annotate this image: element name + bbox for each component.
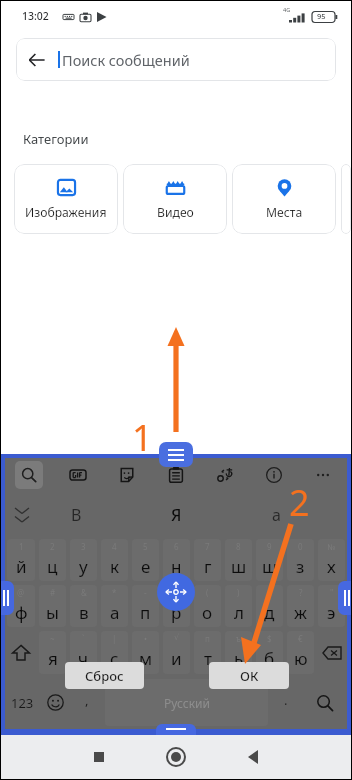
button[interactable]: Keyboard tool [112, 461, 141, 489]
button[interactable]: Shift [7, 631, 35, 674]
button[interactable]: * [101, 585, 128, 627]
button[interactable]: Back [16, 39, 58, 81]
button[interactable]: Я [126, 492, 226, 537]
button[interactable]: 123 [5, 676, 39, 729]
button[interactable]: 8 [225, 539, 252, 581]
button[interactable]: Back [16, 38, 336, 81]
button[interactable]: ъ [225, 631, 252, 674]
button[interactable]: Backspace [318, 631, 345, 674]
staticText: 8 [236, 541, 241, 552]
button[interactable]: € [287, 631, 314, 674]
button[interactable]: | [101, 631, 128, 674]
staticText: й [16, 555, 27, 578]
staticText: в [79, 601, 89, 624]
staticText: я [48, 647, 58, 670]
staticText: ОК [240, 667, 259, 685]
button[interactable]: # [39, 585, 66, 627]
button[interactable]: , [71, 676, 103, 729]
button[interactable]: 4 [101, 539, 128, 581]
button[interactable]: 5 [132, 539, 159, 581]
staticText: ь [234, 647, 244, 670]
button[interactable]: Keyboard tool [161, 461, 190, 489]
staticText: Сброс [85, 667, 124, 685]
staticText: т [204, 647, 212, 670]
button[interactable]: " [318, 585, 345, 627]
button[interactable]: ` [70, 631, 97, 674]
staticText: 1 [132, 413, 153, 462]
button[interactable]: Search [302, 676, 347, 729]
button[interactable]: Русский [105, 679, 268, 726]
button[interactable]: Keyboard tool [308, 461, 337, 489]
staticText: Категории [23, 130, 89, 148]
button[interactable]: Сброс [65, 662, 144, 689]
button[interactable]: Keyboard tool [63, 461, 92, 489]
button[interactable]: 7 [194, 539, 221, 581]
staticText: к [110, 555, 120, 578]
button[interactable]: Изображения [14, 164, 118, 234]
staticText: ы [46, 601, 59, 624]
staticText: В [71, 504, 82, 526]
button[interactable]: Resize right [338, 581, 351, 615]
staticText: а [110, 601, 120, 624]
button[interactable]: 1 [7, 539, 35, 581]
staticText: х [327, 555, 336, 578]
staticText: ? [299, 587, 303, 598]
staticText: 1 [19, 541, 24, 552]
button[interactable]: № [318, 539, 345, 581]
staticText: ф [15, 601, 28, 624]
button[interactable]: • [132, 631, 159, 674]
staticText: н [171, 555, 182, 578]
staticText: Видео [157, 204, 194, 221]
button[interactable]: а [226, 492, 326, 537]
staticText: 123 [11, 694, 34, 712]
staticText: 5 [143, 541, 148, 552]
button[interactable]: Видео [123, 164, 227, 234]
staticText: Изображения [25, 204, 107, 221]
button[interactable]: Move keyboard [157, 573, 195, 611]
button[interactable]: 0 [287, 539, 314, 581]
button[interactable]: - [132, 585, 159, 627]
staticText: 0 [298, 541, 303, 552]
staticText: № [327, 541, 336, 552]
staticText: # [50, 587, 56, 598]
button[interactable]: Места [232, 164, 336, 234]
button[interactable]: ОК [209, 662, 289, 689]
button[interactable]: ( [194, 585, 221, 627]
button[interactable]: ! [256, 585, 283, 627]
staticText: 3 [81, 541, 86, 552]
button[interactable]: ~ [39, 631, 66, 674]
button[interactable]: Keyboard tool [259, 461, 288, 489]
button[interactable]: . [270, 676, 302, 729]
button[interactable]: @ [7, 585, 35, 627]
button[interactable]: Expand suggestions [5, 492, 39, 537]
button[interactable]: Resize bottom [156, 724, 196, 737]
staticText: 2 [50, 541, 55, 552]
button[interactable]: = [163, 585, 190, 627]
button[interactable]: Emoji [39, 676, 71, 729]
button[interactable]: ) [225, 585, 252, 627]
button[interactable]: Keyboard tool [210, 461, 239, 489]
button[interactable]: & [70, 585, 97, 627]
button[interactable]: Keyboard tool [15, 461, 43, 489]
staticText: ж [294, 601, 307, 624]
button[interactable]: ? [287, 585, 314, 627]
button[interactable]: 9 [256, 539, 283, 581]
button[interactable]: 2 [39, 539, 66, 581]
button[interactable] [341, 164, 351, 234]
button[interactable]: В [26, 492, 126, 537]
button[interactable]: 3 [70, 539, 97, 581]
button[interactable]: 6 [163, 539, 190, 581]
staticText: щ [262, 555, 278, 578]
staticText: . [284, 691, 288, 709]
button[interactable]: √ [163, 631, 190, 674]
button[interactable]: Resize left [1, 581, 14, 615]
button[interactable]: $ [256, 631, 283, 674]
button[interactable]: п [194, 631, 221, 674]
staticText: & [81, 587, 87, 598]
button[interactable]: Clipboard [159, 442, 193, 467]
